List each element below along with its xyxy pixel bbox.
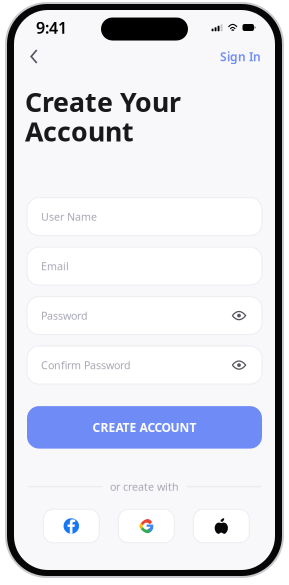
staticText: Password [41,308,88,323]
button[interactable]: Show password [227,302,251,330]
button[interactable]: Sign up with Google [118,509,174,543]
staticText: 9:41 [36,17,67,38]
button[interactable]: Show password [227,351,251,379]
staticText: Email [41,259,69,273]
staticText: User Name [41,209,97,224]
staticText: Confirm Password [41,358,131,372]
button[interactable]: Sign In [217,43,264,70]
button[interactable]: Sign up with Apple [193,509,249,543]
button[interactable]: CREATE ACCOUNT [27,406,262,449]
button[interactable]: Back [19,43,49,70]
button[interactable]: Sign up with Facebook [43,509,99,543]
staticText: CREATE ACCOUNT [92,419,196,435]
staticText: Account [25,113,134,149]
staticText: or create with [110,480,179,494]
staticText: Create Your [25,84,181,119]
staticText: Sign In [220,48,261,64]
